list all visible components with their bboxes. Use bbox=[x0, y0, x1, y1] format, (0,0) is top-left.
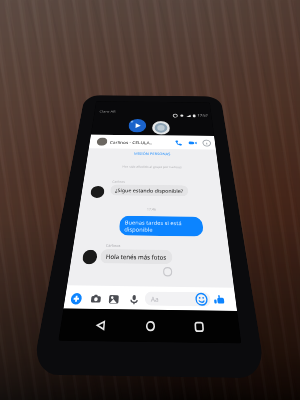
button[interactable]: Voice message bbox=[129, 294, 139, 305]
button[interactable] bbox=[145, 291, 211, 306]
staticText: Claro AR bbox=[99, 109, 116, 114]
button[interactable]: More actions bbox=[70, 293, 82, 305]
button[interactable]: Call bbox=[174, 140, 183, 146]
button[interactable]: Play video bbox=[128, 119, 146, 133]
button[interactable]: Home bbox=[140, 315, 160, 338]
button[interactable]: Camera bbox=[90, 293, 101, 305]
button[interactable]: Back bbox=[89, 314, 111, 337]
button[interactable]: Aa bbox=[151, 294, 159, 303]
staticText: MISIÓN PERSONAS bbox=[88, 151, 217, 156]
staticText: Carlinos - CELULA.. bbox=[110, 140, 153, 145]
button[interactable]: Recents bbox=[189, 316, 210, 338]
staticText: 17:46 bbox=[79, 206, 224, 212]
staticText: 17:57 bbox=[197, 113, 208, 118]
staticText: Hola tenés más fotos bbox=[106, 252, 167, 261]
button[interactable]: Stickers bbox=[196, 293, 207, 305]
button[interactable]: ¿Sigue estando disponible? bbox=[110, 184, 188, 196]
staticText: ¿Sigue estando disponible? bbox=[115, 187, 183, 194]
staticText: Has sido añadido al grupo por Carlinos bbox=[86, 164, 218, 169]
button[interactable]: Video call bbox=[188, 140, 197, 146]
button[interactable]: Buenas tardes si está disponible bbox=[119, 216, 204, 236]
button[interactable]: Hola tenés más fotos bbox=[100, 249, 172, 264]
staticText: Carlinos bbox=[106, 243, 121, 248]
button[interactable]: Photos bbox=[109, 293, 119, 305]
staticText: Carlinos bbox=[112, 179, 126, 184]
button[interactable]: Info bbox=[202, 140, 211, 146]
button[interactable]: Chat head bbox=[152, 121, 170, 135]
staticText: Buenas tardes si está disponible bbox=[124, 219, 198, 233]
button[interactable]: Like bbox=[213, 294, 225, 305]
